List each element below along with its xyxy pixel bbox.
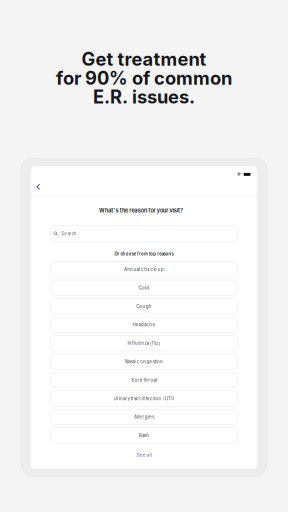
button[interactable]: Headache bbox=[51, 317, 237, 332]
staticText: Headache bbox=[132, 322, 155, 327]
button[interactable]: Nasal congestion bbox=[51, 354, 237, 369]
button[interactable]: Allergies bbox=[51, 409, 237, 425]
staticText: Sore throat bbox=[131, 377, 157, 383]
button[interactable]: Rash bbox=[51, 428, 237, 443]
staticText: Or choose from top reasons bbox=[114, 251, 174, 256]
staticText: Cold bbox=[139, 285, 149, 290]
staticText: Annual check-up bbox=[124, 267, 164, 272]
button[interactable]: See all bbox=[136, 443, 151, 458]
staticText: Allergies bbox=[134, 414, 154, 420]
staticText: Cough bbox=[136, 304, 152, 309]
button[interactable]: Sore throat bbox=[51, 372, 237, 388]
button[interactable]: Back bbox=[34, 181, 43, 192]
staticText: Urinary tract infection (UTI) bbox=[113, 396, 174, 401]
staticText: See all bbox=[136, 452, 151, 458]
staticText: E.R. issues. bbox=[93, 86, 195, 108]
staticText: Rash bbox=[139, 433, 149, 438]
button[interactable]: Cold bbox=[51, 280, 237, 295]
staticText: What's the reason for your visit? bbox=[99, 207, 183, 214]
button[interactable]: Influenza (flu) bbox=[51, 335, 237, 351]
staticText: Influenza (flu) bbox=[127, 340, 160, 346]
button[interactable]: Urinary tract infection (UTI) bbox=[51, 391, 237, 406]
staticText: Nasal congestion bbox=[125, 359, 163, 364]
button[interactable]: Cough bbox=[51, 299, 237, 314]
staticText: Get treatment bbox=[81, 48, 206, 70]
staticText: Search bbox=[61, 231, 77, 236]
staticText: for 90% of common bbox=[56, 67, 232, 89]
button[interactable]: Annual check-up bbox=[51, 262, 237, 277]
